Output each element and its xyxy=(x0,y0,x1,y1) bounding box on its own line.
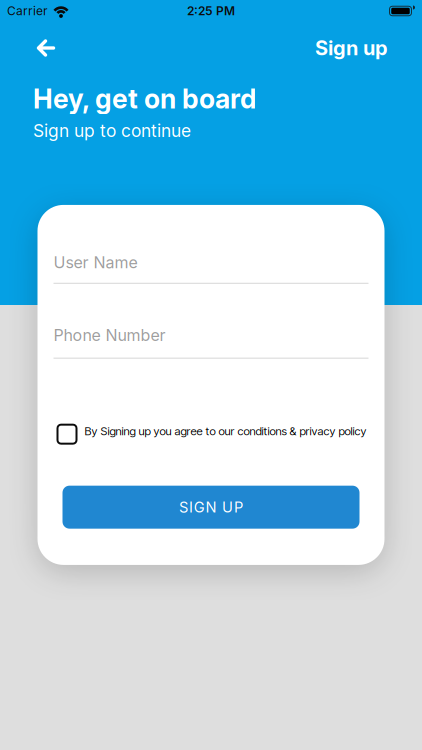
staticText: 2:25 PM xyxy=(187,4,235,18)
staticText: Phone Number xyxy=(53,326,165,345)
staticText: Sign up xyxy=(315,36,388,60)
staticText: Sign up to continue xyxy=(33,120,191,141)
staticText: Carrier xyxy=(7,4,48,18)
staticText: By Signing up you agree to our condition… xyxy=(84,424,366,438)
staticText: SIGN UP xyxy=(179,498,243,516)
button[interactable]: Sign up xyxy=(315,36,422,60)
staticText: User Name xyxy=(53,253,137,272)
staticText: Hey, get on board xyxy=(33,83,257,114)
button[interactable]: Agree to conditions & privacy policy xyxy=(37,359,366,444)
button[interactable]: Back xyxy=(0,39,56,57)
button[interactable]: SIGN UP xyxy=(62,486,359,529)
